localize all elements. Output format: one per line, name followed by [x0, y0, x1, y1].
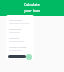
staticText: your loan — [24, 8, 41, 13]
staticText: Calculate — [24, 2, 40, 7]
staticText: Loan term — [9, 37, 20, 40]
staticText: Interest rate — [9, 28, 22, 31]
staticText: Loan amount — [9, 19, 23, 22]
button[interactable] — [8, 55, 26, 58]
staticText: Monthly payment — [9, 46, 27, 49]
button[interactable]: Calculate — [26, 54, 32, 60]
